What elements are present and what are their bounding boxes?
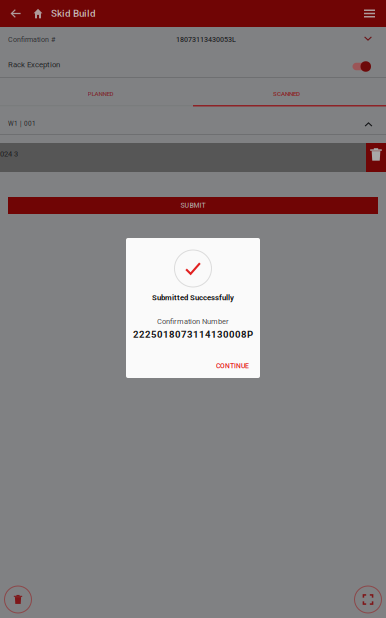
button[interactable]: Confirmation # <box>0 27 386 52</box>
button[interactable]: SCANNED <box>201 83 372 105</box>
button[interactable]: PLANNED <box>0 83 201 105</box>
staticText: SCANNED <box>273 90 300 98</box>
staticText: PLANNED <box>87 90 113 98</box>
staticText: 18073113430053L <box>176 35 236 44</box>
staticText: Skid Build <box>51 8 96 19</box>
staticText: CONTINUE <box>216 362 249 370</box>
staticText: 1024 3 <box>0 150 18 158</box>
staticText: SUBMIT <box>180 201 205 209</box>
button[interactable]: Home <box>27 0 49 27</box>
staticText: 2225018073114130008P <box>133 329 253 340</box>
button[interactable]: CONTINUE <box>206 355 260 378</box>
button[interactable]: W1 | 001 <box>0 107 386 134</box>
button[interactable]: Menu <box>358 0 380 27</box>
staticText: Submitted Successfully <box>152 293 234 302</box>
button[interactable]: Rack Exception <box>352 52 371 77</box>
button[interactable]: Delete all <box>4 586 31 613</box>
staticText: Confirmation # <box>8 35 55 44</box>
staticText: W1 | 001 <box>8 120 36 127</box>
button[interactable]: Delete <box>366 143 386 172</box>
button[interactable]: Scan <box>354 586 381 613</box>
staticText: Rack Exception <box>8 60 60 69</box>
button[interactable]: SUBMIT <box>8 197 378 214</box>
button[interactable]: Back <box>5 0 27 27</box>
staticText: Confirmation Number <box>157 317 229 326</box>
